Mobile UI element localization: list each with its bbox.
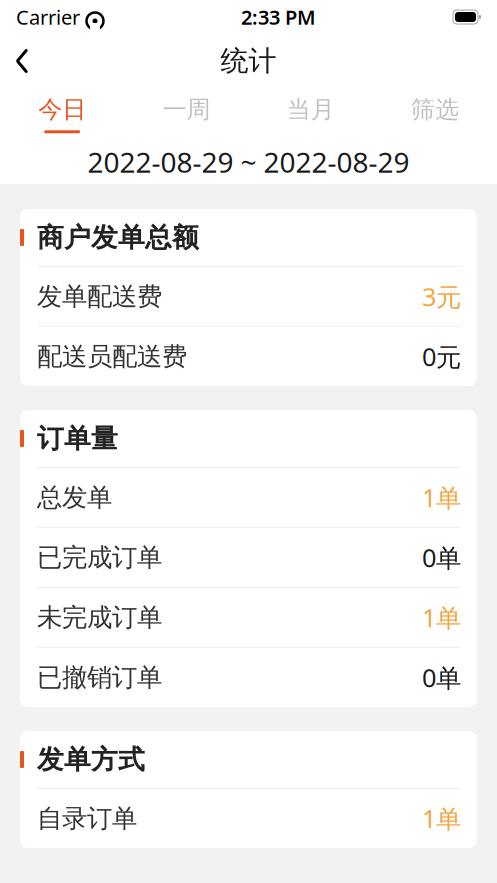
staticText: 1单 (422, 802, 461, 835)
staticText: 当月 (287, 95, 335, 124)
staticText: 已撤销订单 (37, 662, 162, 693)
staticText: 1单 (422, 601, 461, 634)
staticText: 自录订单 (37, 803, 137, 834)
button[interactable]: 一周 (124, 88, 248, 140)
staticText: 3元 (422, 280, 461, 313)
staticText: 统计 (220, 44, 276, 78)
staticText: Carrier (16, 4, 80, 30)
button[interactable]: 今日 (0, 88, 124, 140)
staticText: 商户发单总额 (37, 221, 199, 254)
staticText: 筛选 (411, 95, 459, 124)
button[interactable]: 返回 (0, 39, 44, 83)
staticText: 配送员配送费 (37, 341, 187, 372)
staticText: 2:33 PM (241, 4, 316, 30)
staticText: 0单 (422, 541, 461, 574)
staticText: 已完成订单 (37, 542, 162, 573)
staticText: 今日 (38, 95, 86, 124)
staticText: 一周 (162, 95, 210, 124)
staticText: 0单 (422, 661, 461, 694)
staticText: 2022-08-29 ~ 2022-08-29 (87, 143, 409, 181)
staticText: 发单方式 (37, 743, 145, 776)
button[interactable]: 筛选 (373, 88, 497, 140)
staticText: 0元 (422, 340, 461, 373)
staticText: 发单配送费 (37, 281, 162, 312)
staticText: 未完成订单 (37, 602, 162, 633)
staticText: 1单 (422, 481, 461, 514)
button[interactable]: 当月 (248, 88, 373, 140)
staticText: 总发单 (37, 482, 112, 513)
staticText: 订单量 (37, 422, 118, 455)
